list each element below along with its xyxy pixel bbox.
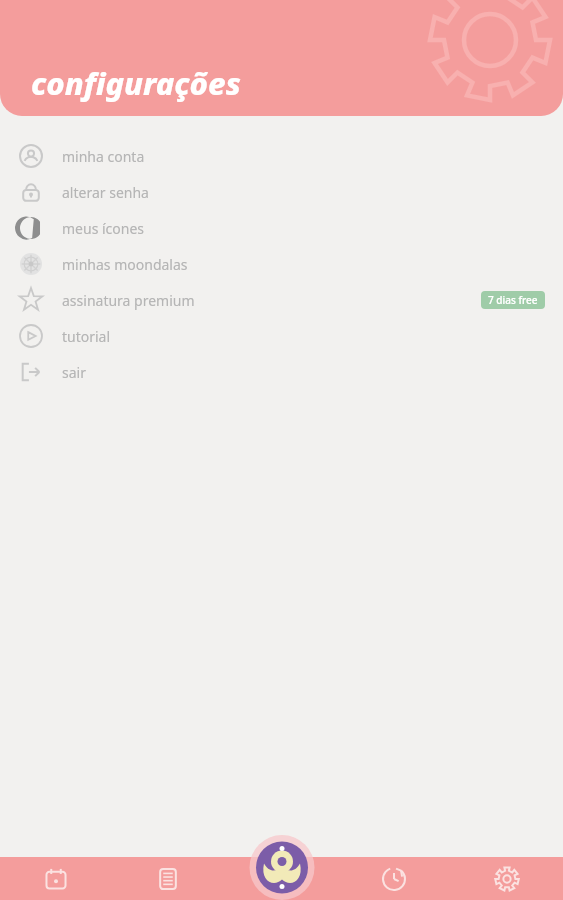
staticText: minhas moondalas — [62, 255, 188, 274]
staticText: configurações — [31, 62, 241, 104]
button[interactable]: Settings — [450, 857, 563, 900]
button[interactable]: sair — [0, 354, 563, 390]
staticText: sair — [62, 363, 86, 382]
button[interactable]: Moon home — [249, 835, 315, 900]
button[interactable]: assinatura premium — [0, 282, 563, 318]
button[interactable]: Calendar — [0, 857, 112, 900]
button[interactable]: minhas moondalas — [0, 246, 563, 282]
staticText: meus ícones — [62, 219, 145, 238]
button[interactable]: alterar senha — [0, 174, 563, 210]
staticText: alterar senha — [62, 183, 149, 202]
button[interactable]: tutorial — [0, 318, 563, 354]
staticText: 7 dias free — [488, 293, 538, 307]
button[interactable]: History — [337, 857, 450, 900]
button[interactable]: Notes — [112, 857, 224, 900]
button[interactable]: meus ícones — [0, 210, 563, 246]
staticText: assinatura premium — [62, 291, 195, 310]
staticText: tutorial — [62, 327, 111, 346]
staticText: minha conta — [62, 147, 145, 166]
button[interactable]: minha conta — [0, 138, 563, 174]
